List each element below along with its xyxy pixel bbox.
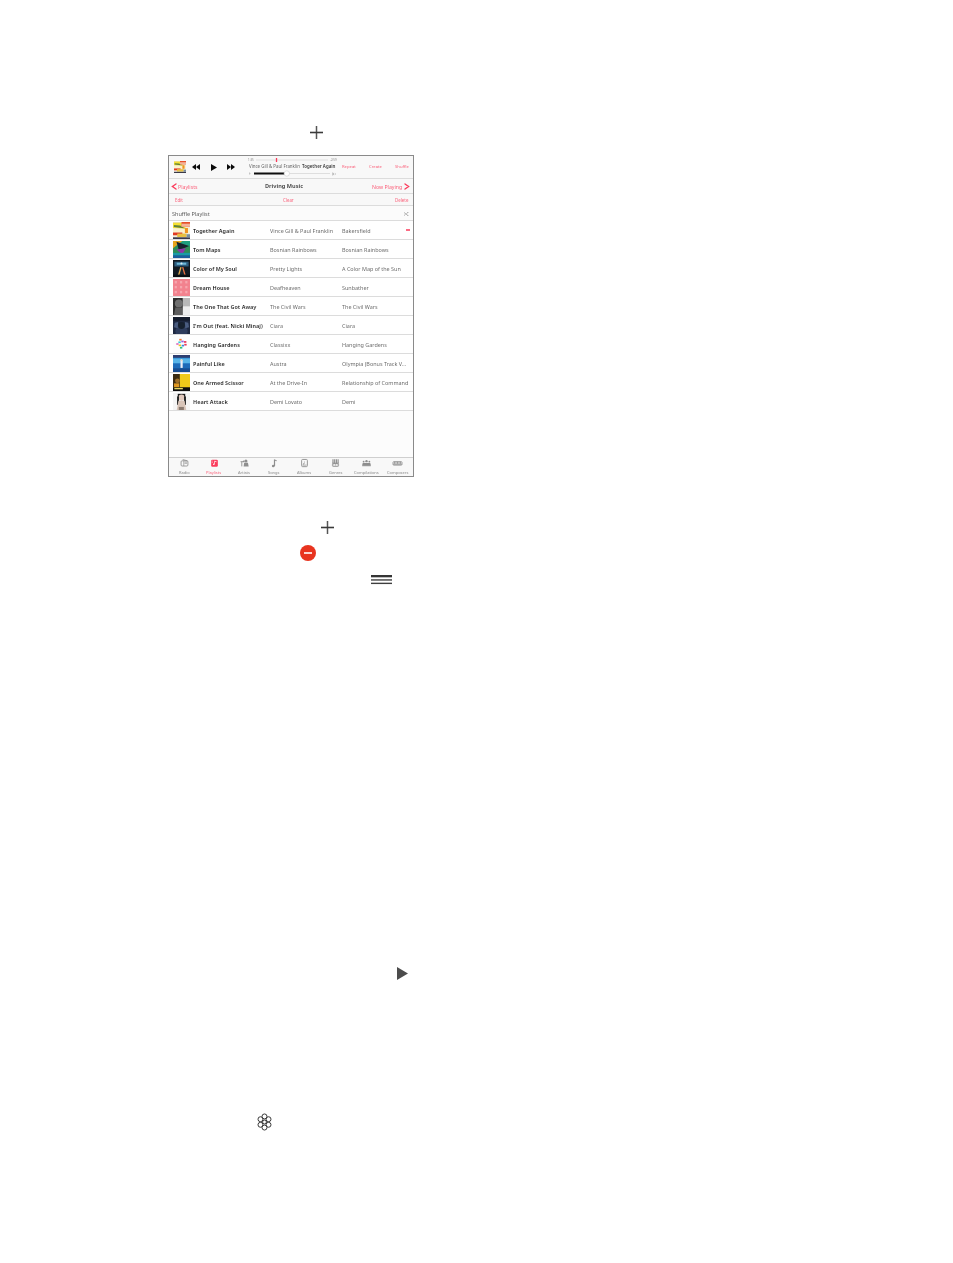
button[interactable]: Heart Attack — [169, 392, 413, 410]
button[interactable]: Shuffle Playlist — [169, 206, 413, 220]
staticText: Together Again — [193, 227, 269, 234]
staticText: Playlists — [206, 470, 222, 475]
staticText: Driving Music — [265, 182, 304, 190]
staticText: Pretty Lights — [270, 265, 341, 272]
staticText: Genres — [329, 470, 343, 475]
staticText: Olympia (Bonus Track V... — [342, 360, 410, 367]
staticText: Classixx — [270, 341, 341, 348]
staticText: The Civil Wars — [270, 303, 341, 310]
staticText: Artists — [238, 470, 250, 475]
button[interactable]: Songs — [259, 458, 289, 476]
staticText: Austra — [270, 360, 341, 367]
staticText: Clear — [283, 197, 294, 203]
staticText: I'm Out (feat. Nicki Minaj) — [193, 322, 269, 329]
button[interactable]: Delete — [395, 194, 409, 205]
button[interactable]: Clear — [283, 194, 294, 205]
button[interactable]: Painful Like — [169, 354, 413, 372]
staticText: -2:59 — [330, 158, 337, 162]
button[interactable]: Play — [211, 164, 217, 171]
button[interactable]: Add — [321, 521, 334, 534]
staticText: Ciara — [342, 322, 410, 329]
button[interactable]: The One That Got Away — [169, 297, 413, 315]
button[interactable]: One Armed Scissor — [169, 373, 413, 391]
button[interactable]: Playlists — [172, 179, 198, 193]
button[interactable]: Compilations — [351, 458, 382, 476]
button[interactable]: Color of My Soul — [169, 259, 413, 277]
staticText: Together Again — [302, 163, 336, 169]
staticText: Repeat — [342, 164, 356, 170]
staticText: Relationship of Command — [342, 379, 410, 386]
staticText: Playlists — [178, 183, 198, 190]
staticText: Shuffle — [395, 164, 409, 170]
staticText: Create — [369, 164, 382, 170]
staticText: The Civil Wars — [342, 303, 410, 310]
staticText: Compilations — [354, 470, 379, 475]
button[interactable]: Previous — [192, 164, 200, 170]
staticText: Painful Like — [193, 360, 269, 367]
staticText: At the Drive-In — [270, 379, 341, 386]
staticText: Sunbather — [342, 284, 410, 291]
staticText: Delete — [395, 197, 409, 203]
button[interactable]: Shuffle — [392, 156, 412, 178]
button[interactable]: Now Playing — [372, 179, 409, 193]
button[interactable]: Settings — [257, 1113, 272, 1131]
staticText: Bosnian Rainbows — [342, 246, 410, 253]
staticText: Dream House — [193, 284, 269, 291]
button[interactable]: Tom Maps — [169, 240, 413, 258]
staticText: Heart Attack — [193, 398, 269, 405]
button[interactable]: Radio — [169, 458, 199, 476]
staticText: Ciara — [270, 322, 341, 329]
staticText: Vince Gill & Paul Franklin — [249, 163, 302, 169]
staticText: Tom Maps — [193, 246, 269, 253]
button[interactable]: Albums — [289, 458, 320, 476]
staticText: Demi Lovato — [270, 398, 341, 405]
staticText: Demi — [342, 398, 410, 405]
staticText: Color of My Soul — [193, 265, 269, 272]
staticText: One Armed Scissor — [193, 379, 269, 386]
staticText: 1:35 — [248, 158, 254, 162]
staticText: Vince Gill & Paul Franklin — [270, 227, 341, 234]
staticText: Composers — [387, 470, 409, 475]
button[interactable]: Reorder — [371, 575, 392, 584]
button[interactable]: Edit — [175, 194, 183, 205]
button[interactable]: Composers — [382, 458, 413, 476]
staticText: A Color Map of the Sun — [342, 265, 410, 272]
staticText: Albums — [297, 470, 312, 475]
staticText: Hanging Gardens — [342, 341, 410, 348]
button[interactable]: Play — [397, 967, 408, 980]
staticText: Hanging Gardens — [193, 341, 269, 348]
staticText: Deafheaven — [270, 284, 341, 291]
staticText: Now Playing — [372, 183, 403, 190]
button[interactable]: Remove — [300, 545, 316, 561]
button[interactable]: Repeat — [339, 156, 359, 178]
button[interactable]: Next — [227, 164, 235, 170]
button[interactable]: Dream House — [169, 278, 413, 296]
staticText: Bosnian Rainbows — [270, 246, 341, 253]
staticText: Songs — [268, 470, 280, 475]
button[interactable]: Genres — [320, 458, 351, 476]
button[interactable]: Together Again — [169, 221, 413, 239]
staticText: The One That Got Away — [193, 303, 269, 310]
button[interactable]: Hanging Gardens — [169, 335, 413, 353]
staticText: Edit — [175, 197, 183, 203]
button[interactable]: Create — [366, 156, 385, 178]
staticText: Bakersfield — [342, 227, 410, 234]
button[interactable]: Add — [310, 126, 323, 139]
staticText: Shuffle Playlist — [172, 210, 210, 217]
button[interactable]: Playlists — [199, 458, 229, 476]
button[interactable]: I'm Out (feat. Nicki Minaj) — [169, 316, 413, 334]
button[interactable]: Artists — [229, 458, 259, 476]
staticText: Radio — [179, 470, 190, 475]
